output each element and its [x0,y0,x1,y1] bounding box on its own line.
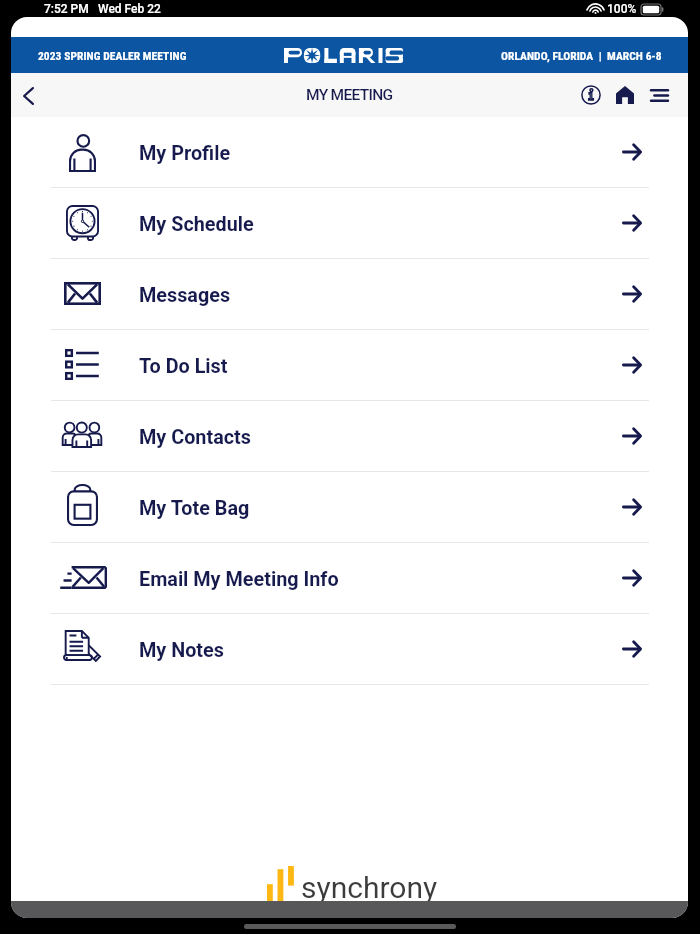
staticText: 100% [607,2,637,16]
button[interactable]: My Tote Bag [11,472,688,543]
button[interactable]: Messages [11,259,688,330]
button[interactable]: Information [574,78,608,112]
button[interactable]: My Schedule [11,188,688,259]
staticText: My Tote Bag [139,497,250,520]
staticText: My Contacts [139,426,251,449]
button[interactable]: Menu [642,78,676,112]
staticText: My Notes [139,639,224,662]
staticText: synchrony [301,870,438,905]
staticText: ORLANDO, FLORIDA | MARCH 6-8 [501,49,662,62]
button[interactable]: My Profile [11,117,688,188]
staticText: My Profile [139,142,231,165]
staticText: 7:52 PM [44,2,89,16]
staticText: To Do List [139,355,228,378]
button[interactable]: Home [608,78,642,112]
button[interactable]: My Notes [11,614,688,685]
staticText: Wed Feb 22 [98,2,161,16]
button[interactable]: Back [11,73,55,117]
staticText: MY MEETING [306,86,393,104]
button[interactable]: My Contacts [11,401,688,472]
staticText: 2023 SPRING DEALER MEETING [38,49,187,62]
button[interactable]: Email My Meeting Info [11,543,688,614]
staticText: Email My Meeting Info [139,568,339,591]
staticText: Messages [139,284,231,307]
button[interactable]: To Do List [11,330,688,401]
staticText: My Schedule [139,213,254,236]
